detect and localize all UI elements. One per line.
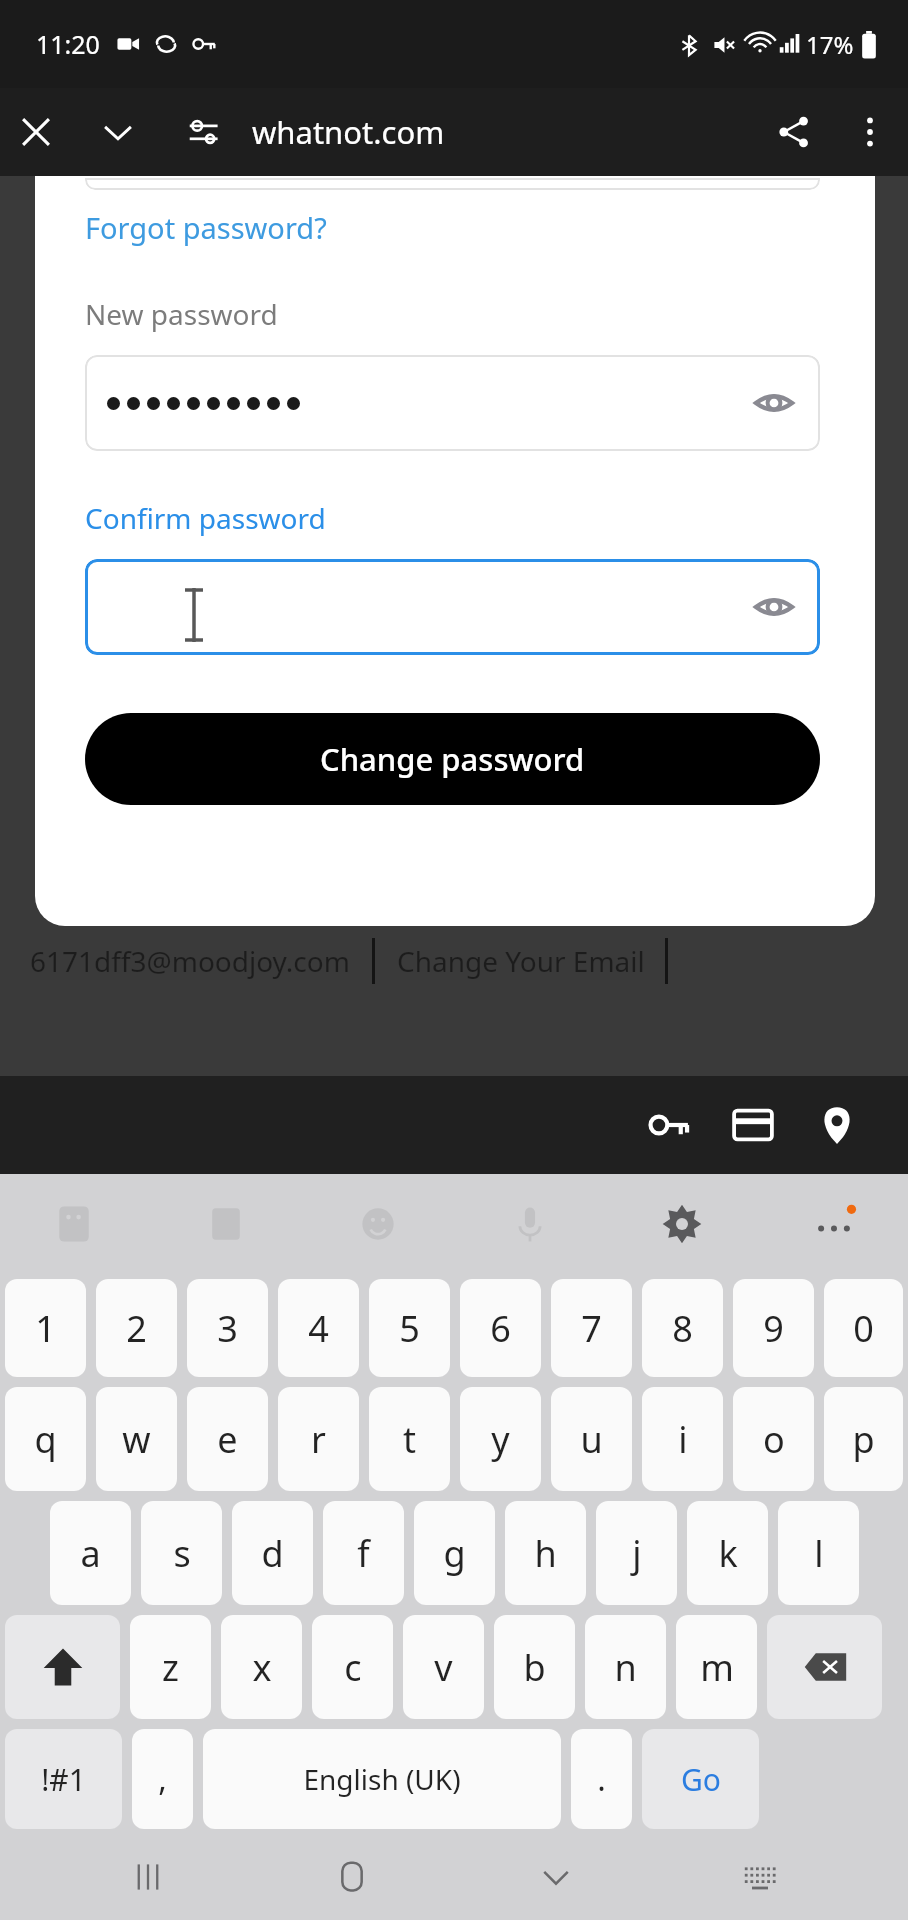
button[interactable]: 4 bbox=[278, 1279, 359, 1377]
staticText: n bbox=[614, 1643, 637, 1692]
button[interactable]: Passwords bbox=[638, 1094, 700, 1156]
staticText: l bbox=[814, 1529, 824, 1578]
button[interactable]: a bbox=[50, 1501, 131, 1605]
button[interactable]: Change password bbox=[85, 713, 820, 805]
button[interactable]: Payment methods bbox=[722, 1094, 784, 1156]
button[interactable]: x bbox=[221, 1615, 302, 1719]
button[interactable]: l bbox=[778, 1501, 859, 1605]
staticText: Confirm password bbox=[85, 499, 326, 537]
staticText: c bbox=[344, 1643, 362, 1692]
staticText: English (UK) bbox=[303, 1760, 461, 1798]
staticText: r bbox=[311, 1415, 326, 1464]
button[interactable]: Site settings bbox=[174, 102, 234, 162]
button[interactable]: Downloads bbox=[82, 96, 154, 168]
button[interactable]: k bbox=[687, 1501, 768, 1605]
staticText: Go bbox=[681, 1759, 721, 1800]
staticText: 17% bbox=[806, 28, 854, 61]
button[interactable]: . bbox=[571, 1729, 632, 1829]
button[interactable]: Emoji bbox=[350, 1196, 406, 1252]
button[interactable]: b bbox=[494, 1615, 575, 1719]
button[interactable]: w bbox=[96, 1387, 177, 1491]
staticText: Change Your Email bbox=[397, 942, 645, 980]
button[interactable]: Go bbox=[642, 1729, 759, 1829]
button[interactable]: j bbox=[596, 1501, 677, 1605]
staticText: z bbox=[162, 1643, 179, 1692]
button[interactable]: 0 bbox=[824, 1279, 903, 1377]
button[interactable]: Switch keyboard bbox=[722, 1839, 798, 1915]
button[interactable]: Stickers bbox=[46, 1196, 102, 1252]
button[interactable]: y bbox=[460, 1387, 541, 1491]
button[interactable]: Forgot password? bbox=[85, 208, 327, 247]
button[interactable]: Backspace bbox=[767, 1615, 882, 1719]
button[interactable]: Recent apps bbox=[110, 1839, 186, 1915]
staticText: f bbox=[357, 1529, 370, 1578]
staticText: 11:20 bbox=[36, 27, 100, 61]
button[interactable]: 8 bbox=[642, 1279, 723, 1377]
button[interactable]: o bbox=[733, 1387, 814, 1491]
staticText: 7 bbox=[581, 1304, 602, 1353]
button[interactable]: Shift bbox=[5, 1615, 120, 1719]
staticText: e bbox=[217, 1415, 238, 1464]
button[interactable]: Settings bbox=[654, 1196, 710, 1252]
button[interactable]: 2 bbox=[96, 1279, 177, 1377]
staticText: i bbox=[678, 1415, 688, 1464]
staticText: a bbox=[80, 1529, 101, 1578]
staticText: s bbox=[173, 1529, 191, 1578]
staticText: v bbox=[434, 1643, 453, 1692]
staticText: Forgot password? bbox=[85, 208, 327, 247]
button[interactable]: q bbox=[5, 1387, 86, 1491]
staticText: New password bbox=[85, 295, 278, 333]
button[interactable]: 5 bbox=[369, 1279, 450, 1377]
staticText: , bbox=[158, 1757, 167, 1801]
staticText: 9 bbox=[763, 1304, 784, 1353]
button[interactable]: More bbox=[806, 1196, 862, 1252]
button[interactable]: 9 bbox=[733, 1279, 814, 1377]
staticText: w bbox=[122, 1415, 151, 1464]
button[interactable]: d bbox=[232, 1501, 313, 1605]
button[interactable]: Voice input bbox=[502, 1196, 558, 1252]
button[interactable]: Show password bbox=[85, 355, 820, 451]
button[interactable]: GIF bbox=[198, 1196, 254, 1252]
button[interactable]: !#1 bbox=[5, 1729, 122, 1829]
button[interactable]: v bbox=[403, 1615, 484, 1719]
button[interactable]: More options bbox=[832, 94, 908, 170]
button[interactable]: f bbox=[323, 1501, 404, 1605]
button[interactable]: e bbox=[187, 1387, 268, 1491]
staticText: 8 bbox=[672, 1304, 693, 1353]
button[interactable]: g bbox=[414, 1501, 495, 1605]
button[interactable]: c bbox=[312, 1615, 393, 1719]
button[interactable]: z bbox=[130, 1615, 211, 1719]
button[interactable]: Home bbox=[314, 1839, 390, 1915]
staticText: d bbox=[261, 1529, 284, 1578]
button[interactable]: 7 bbox=[551, 1279, 632, 1377]
button[interactable]: u bbox=[551, 1387, 632, 1491]
button[interactable]: 1 bbox=[5, 1279, 86, 1377]
staticText: 1 bbox=[35, 1304, 56, 1353]
button[interactable]: Show password bbox=[85, 559, 820, 655]
button[interactable]: English (UK) bbox=[203, 1729, 561, 1829]
button[interactable]: Hide keyboard bbox=[518, 1839, 594, 1915]
button[interactable]: s bbox=[141, 1501, 222, 1605]
staticText: 0 bbox=[853, 1304, 874, 1353]
button[interactable]: Addresses bbox=[806, 1094, 868, 1156]
button[interactable]: Share bbox=[756, 94, 832, 170]
button[interactable]: 6 bbox=[460, 1279, 541, 1377]
button[interactable]: , bbox=[132, 1729, 193, 1829]
button[interactable]: Close bbox=[0, 96, 72, 168]
button[interactable]: r bbox=[278, 1387, 359, 1491]
button[interactable]: i bbox=[642, 1387, 723, 1491]
staticText: . bbox=[597, 1757, 606, 1801]
button[interactable]: p bbox=[824, 1387, 903, 1491]
staticText: h bbox=[534, 1529, 557, 1578]
staticText: p bbox=[852, 1415, 875, 1464]
staticText: x bbox=[252, 1643, 272, 1692]
button[interactable]: 3 bbox=[187, 1279, 268, 1377]
staticText: 6171dff3@moodjoy.com bbox=[30, 942, 350, 980]
staticText: y bbox=[491, 1415, 510, 1464]
staticText: 2 bbox=[126, 1304, 147, 1353]
staticText: b bbox=[523, 1643, 546, 1692]
button[interactable]: h bbox=[505, 1501, 586, 1605]
button[interactable]: n bbox=[585, 1615, 666, 1719]
button[interactable]: t bbox=[369, 1387, 450, 1491]
button[interactable]: m bbox=[676, 1615, 757, 1719]
